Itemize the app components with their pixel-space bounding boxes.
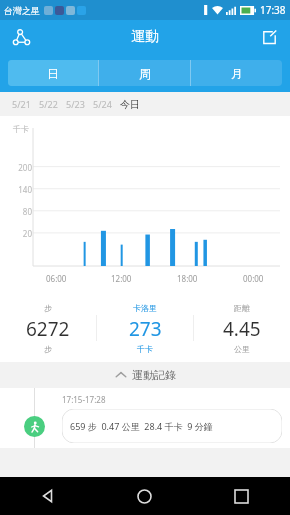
staticText: 日 (47, 66, 59, 81)
staticText: 千卡 (13, 124, 29, 134)
button[interactable]: 月 (191, 60, 282, 86)
staticText: 運動記錄 (132, 368, 176, 382)
staticText: 卡洛里 (133, 303, 157, 313)
staticText: 6272 (26, 316, 70, 342)
staticText: 5/22 (39, 98, 58, 110)
staticText: 12:00 (111, 273, 132, 284)
staticText: 5/23 (66, 98, 85, 110)
staticText: 今日 (120, 98, 140, 111)
button[interactable]: Back (0, 477, 96, 515)
button[interactable]: Home (96, 477, 193, 515)
staticText: 200 (6, 162, 32, 173)
staticText: 千卡 (137, 344, 153, 354)
button[interactable]: 今日 (116, 98, 144, 111)
staticText: 月 (231, 66, 243, 81)
staticText: 273 (129, 316, 162, 342)
button[interactable]: Share (6, 22, 36, 52)
button[interactable]: Recents (193, 477, 290, 515)
button[interactable]: 周 (99, 60, 190, 86)
staticText: 周 (139, 66, 151, 81)
staticText: 運動 (131, 28, 159, 46)
staticText: 80 (6, 206, 32, 217)
staticText: 公里 (234, 344, 250, 354)
other: Walking (24, 416, 45, 437)
staticText: 659 步 0.47 公里 28.4 千卡 9 分鐘 (70, 420, 213, 432)
staticText: 台灣之星 (4, 5, 40, 16)
staticText: 步 (44, 344, 52, 354)
button[interactable]: Export (254, 22, 284, 52)
button[interactable]: 步 (0, 294, 96, 362)
button[interactable]: 運動記錄 (0, 362, 290, 388)
button[interactable]: 659 步 0.47 公里 28.4 千卡 9 分鐘 (62, 409, 282, 443)
button[interactable]: 距離 (194, 294, 290, 362)
button[interactable]: 5/22 (35, 98, 62, 110)
button[interactable]: 5/24 (89, 98, 116, 110)
staticText: 20 (6, 228, 32, 239)
button[interactable]: 日 (8, 60, 98, 86)
staticText: 00:00 (243, 273, 264, 284)
staticText: 17:15-17:28 (62, 394, 106, 405)
staticText: 步 (44, 303, 52, 313)
button[interactable]: 5/21 (8, 98, 35, 110)
staticText: 距離 (234, 303, 250, 313)
staticText: 4.45 (223, 316, 261, 342)
staticText: 17:38 (260, 3, 286, 17)
button[interactable]: 卡洛里 (97, 294, 193, 362)
button[interactable]: 5/23 (62, 98, 89, 110)
staticText: 5/24 (93, 98, 112, 110)
staticText: 140 (6, 184, 32, 195)
staticText: 5/21 (12, 98, 31, 110)
staticText: 18:00 (177, 273, 198, 284)
staticText: 06:00 (46, 273, 67, 284)
